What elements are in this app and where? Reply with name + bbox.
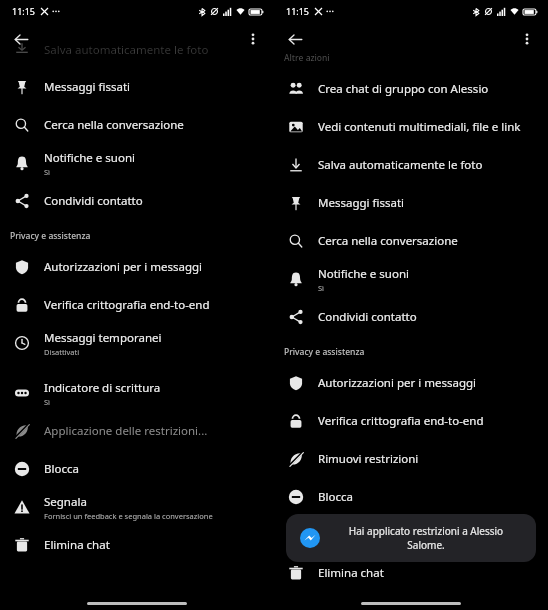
- button[interactable]: Vedi contenuti multimediali, file e link: [274, 108, 548, 146]
- button[interactable]: Messaggi fissati: [0, 68, 274, 106]
- button[interactable]: Verifica crittografia end-to-end: [274, 402, 548, 440]
- staticText: Notifiche e suoni: [318, 266, 409, 282]
- button[interactable]: Cerca nella conversazione: [274, 222, 548, 260]
- button[interactable]: Hai applicato restrizioni a Alessio Salo…: [286, 514, 536, 562]
- staticText: Segnala: [318, 527, 361, 543]
- button[interactable]: Verifica crittografia end-to-end: [0, 286, 274, 324]
- button[interactable]: Notifiche e suoni: [0, 144, 274, 182]
- button[interactable]: More options: [240, 26, 266, 52]
- staticText: Privacy e assistenza: [284, 346, 365, 358]
- button[interactable]: Rimuovi restrizioni: [274, 440, 548, 478]
- button[interactable]: Elimina chat: [274, 554, 548, 592]
- staticText: Rimuovi restrizioni: [318, 451, 419, 467]
- staticText: 11:15: [12, 5, 36, 17]
- button[interactable]: Elimina chat: [0, 526, 274, 564]
- button[interactable]: Condividi contatto: [0, 182, 274, 220]
- staticText: 11:15: [286, 5, 310, 17]
- staticText: Verifica crittografia end-to-end: [318, 413, 484, 429]
- staticText: Applicazione delle restrizioni...: [44, 423, 208, 439]
- staticText: Blocca: [44, 461, 79, 477]
- staticText: Hai applicato restrizioni a Alessio Salo…: [330, 524, 522, 552]
- staticText: Indicatore di scrittura: [44, 380, 161, 396]
- staticText: Disattivati: [44, 347, 80, 357]
- button[interactable]: Segnala: [0, 488, 274, 526]
- staticText: Cerca nella conversazione: [44, 117, 184, 133]
- button[interactable]: Autorizzazioni per i messaggi: [274, 364, 548, 402]
- button[interactable]: Back: [8, 26, 34, 52]
- staticText: Crea chat di gruppo con Alessio: [318, 81, 489, 97]
- button[interactable]: Applicazione delle restrizioni...: [0, 412, 274, 450]
- staticText: Altre azioni: [284, 52, 330, 62]
- button[interactable]: Condividi contatto: [274, 298, 548, 336]
- staticText: Elimina chat: [318, 565, 384, 581]
- staticText: Sì: [44, 397, 51, 407]
- staticText: Condividi contatto: [44, 193, 143, 209]
- staticText: Cerca nella conversazione: [318, 233, 458, 249]
- staticText: Segnala: [44, 494, 87, 510]
- staticText: Condividi contatto: [318, 309, 417, 325]
- button[interactable]: Indicatore di scrittura: [0, 374, 274, 412]
- button[interactable]: Salva automaticamente le foto: [274, 146, 548, 184]
- button[interactable]: Blocca: [0, 450, 274, 488]
- staticText: Privacy e assistenza: [10, 230, 91, 242]
- button[interactable]: Back: [282, 26, 308, 52]
- button[interactable]: Crea chat di gruppo con Alessio: [274, 70, 548, 108]
- button[interactable]: Blocca: [274, 478, 548, 516]
- staticText: Autorizzazioni per i messaggi: [44, 259, 203, 275]
- button[interactable]: Autorizzazioni per i messaggi: [0, 248, 274, 286]
- staticText: Verifica crittografia end-to-end: [44, 297, 210, 313]
- staticText: Autorizzazioni per i messaggi: [318, 375, 477, 391]
- staticText: Sì: [44, 167, 51, 177]
- button[interactable]: Messaggi temporanei: [0, 324, 274, 362]
- staticText: Sì: [318, 283, 325, 293]
- staticText: Fornisci un feedback e segnala la conver…: [44, 511, 213, 521]
- button[interactable]: Notifiche e suoni: [274, 260, 548, 298]
- staticText: Elimina chat: [44, 537, 110, 553]
- staticText: Messaggi fissati: [318, 195, 404, 211]
- staticText: Salva automaticamente le foto: [44, 42, 209, 54]
- staticText: Salva automaticamente le foto: [318, 157, 483, 173]
- button[interactable]: More options: [514, 26, 540, 52]
- staticText: Blocca: [318, 489, 353, 505]
- staticText: Messaggi fissati: [44, 79, 130, 95]
- staticText: Messaggi temporanei: [44, 330, 162, 346]
- staticText: Vedi contenuti multimediali, file e link: [318, 119, 521, 135]
- button[interactable]: Cerca nella conversazione: [0, 106, 274, 144]
- staticText: Notifiche e suoni: [44, 150, 135, 166]
- button[interactable]: Messaggi fissati: [274, 184, 548, 222]
- button[interactable]: Segnala: [274, 516, 548, 554]
